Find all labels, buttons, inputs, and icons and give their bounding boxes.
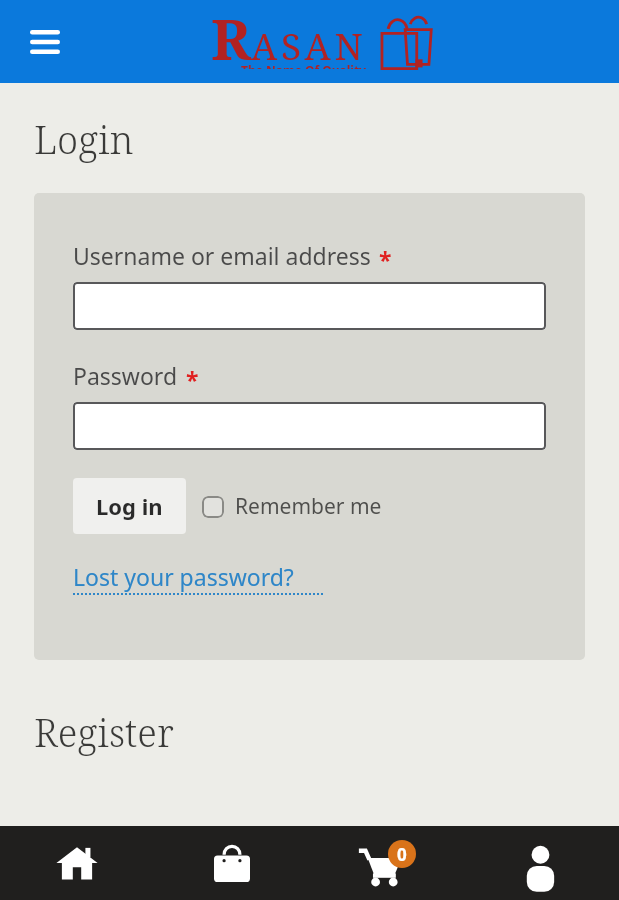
staticText: 0 <box>397 843 407 866</box>
staticText: ASAN <box>251 20 367 70</box>
button[interactable]: Remember me <box>186 486 388 527</box>
button[interactable]: Home <box>0 826 154 900</box>
staticText: Login <box>34 113 134 165</box>
button[interactable]: Menu <box>22 19 68 65</box>
button[interactable] <box>73 402 546 450</box>
staticText: The Name Of Quality <box>241 62 366 69</box>
staticText: * <box>379 244 392 275</box>
button[interactable]: Cart <box>309 826 464 900</box>
button[interactable]: Log in <box>73 478 186 534</box>
staticText: Remember me <box>235 492 382 521</box>
staticText: Username or email address <box>73 240 371 271</box>
staticText: Register <box>34 706 174 758</box>
button[interactable]: Account <box>464 826 619 900</box>
staticText: R <box>211 0 251 76</box>
staticText: Log in <box>96 491 163 521</box>
button[interactable] <box>73 282 546 330</box>
staticText: * <box>186 364 199 395</box>
staticText: Lost your password? <box>73 561 294 592</box>
staticText: Password <box>73 360 178 391</box>
button[interactable]: Shop <box>154 826 309 900</box>
button[interactable]: Lost your password? <box>73 561 325 596</box>
